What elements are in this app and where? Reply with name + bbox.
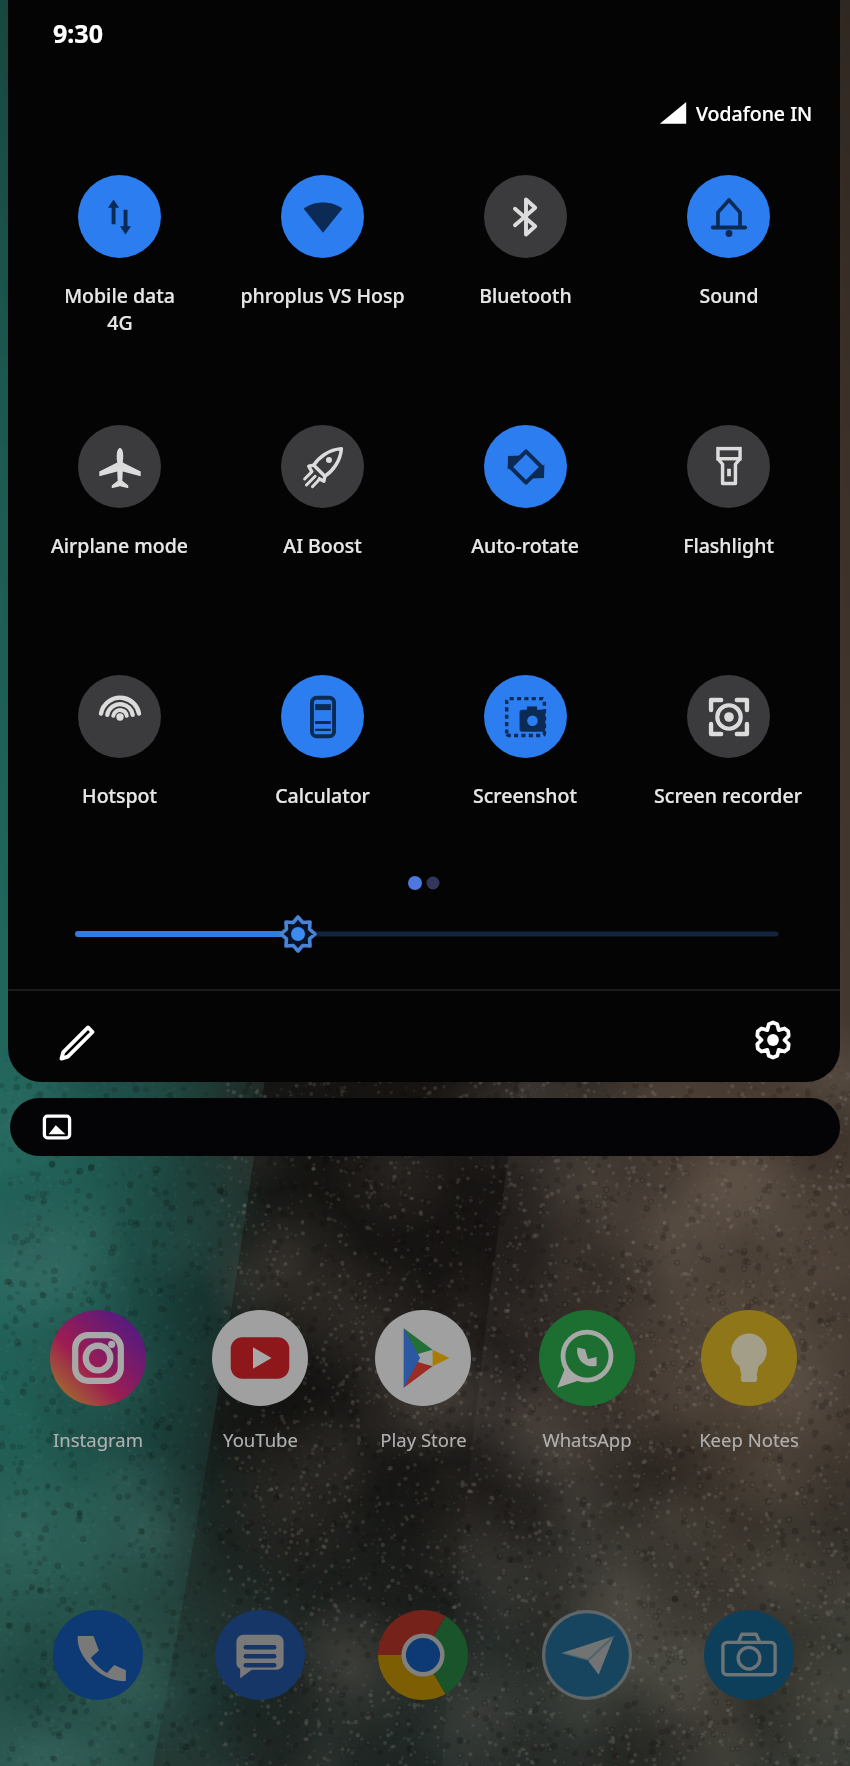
button[interactable]: Sound: [628, 175, 828, 350]
button[interactable]: YouTube: [180, 1427, 340, 1452]
button[interactable]: Hotspot: [19, 675, 219, 850]
button[interactable]: Play Store: [343, 1427, 503, 1452]
staticText: YouTube: [223, 1427, 298, 1452]
button[interactable]: Screenshot preview: [10, 1098, 840, 1156]
button[interactable]: Settings: [741, 1008, 805, 1072]
button[interactable]: Brightness: [70, 910, 780, 960]
button[interactable]: Auto-rotate: [425, 425, 625, 600]
button[interactable]: Instagram: [18, 1427, 178, 1452]
button[interactable]: Calculator: [222, 675, 422, 850]
other: Screenshot preview: [42, 1112, 72, 1142]
button[interactable]: Bluetooth: [425, 175, 625, 350]
staticText: Play Store: [380, 1427, 467, 1452]
button[interactable]: Mobile data: [19, 175, 219, 350]
staticText: Screenshot: [473, 782, 577, 809]
staticText: Flashlight: [683, 532, 774, 559]
button[interactable]: Screenshot: [425, 675, 625, 850]
staticText: Screen recorder: [654, 782, 802, 809]
button[interactable]: Edit tiles: [45, 1011, 109, 1075]
staticText: Hotspot: [82, 782, 157, 809]
button[interactable]: Airplane mode: [19, 425, 219, 600]
button[interactable]: Keep Notes: [669, 1427, 829, 1452]
staticText: Mobile data: [64, 282, 175, 309]
staticText: phroplus VS Hosp: [240, 282, 405, 309]
button[interactable]: phroplus VS Hosp: [222, 175, 422, 350]
button[interactable]: Flashlight: [628, 425, 828, 600]
staticText: WhatsApp: [542, 1427, 632, 1452]
staticText: Instagram: [53, 1427, 143, 1452]
staticText: Auto-rotate: [471, 532, 579, 559]
staticText: 4G: [107, 309, 133, 336]
button[interactable]: Screen recorder: [628, 675, 828, 850]
staticText: Vodafone IN: [696, 100, 813, 127]
staticText: Sound: [699, 282, 759, 309]
staticText: Keep Notes: [699, 1427, 799, 1452]
staticText: 9:30: [53, 16, 103, 50]
staticText: AI Boost: [283, 532, 362, 559]
button[interactable]: AI Boost: [222, 425, 422, 600]
staticText: Bluetooth: [479, 282, 572, 309]
button[interactable]: WhatsApp: [507, 1427, 667, 1452]
staticText: Airplane mode: [51, 532, 188, 559]
staticText: Calculator: [275, 782, 370, 809]
